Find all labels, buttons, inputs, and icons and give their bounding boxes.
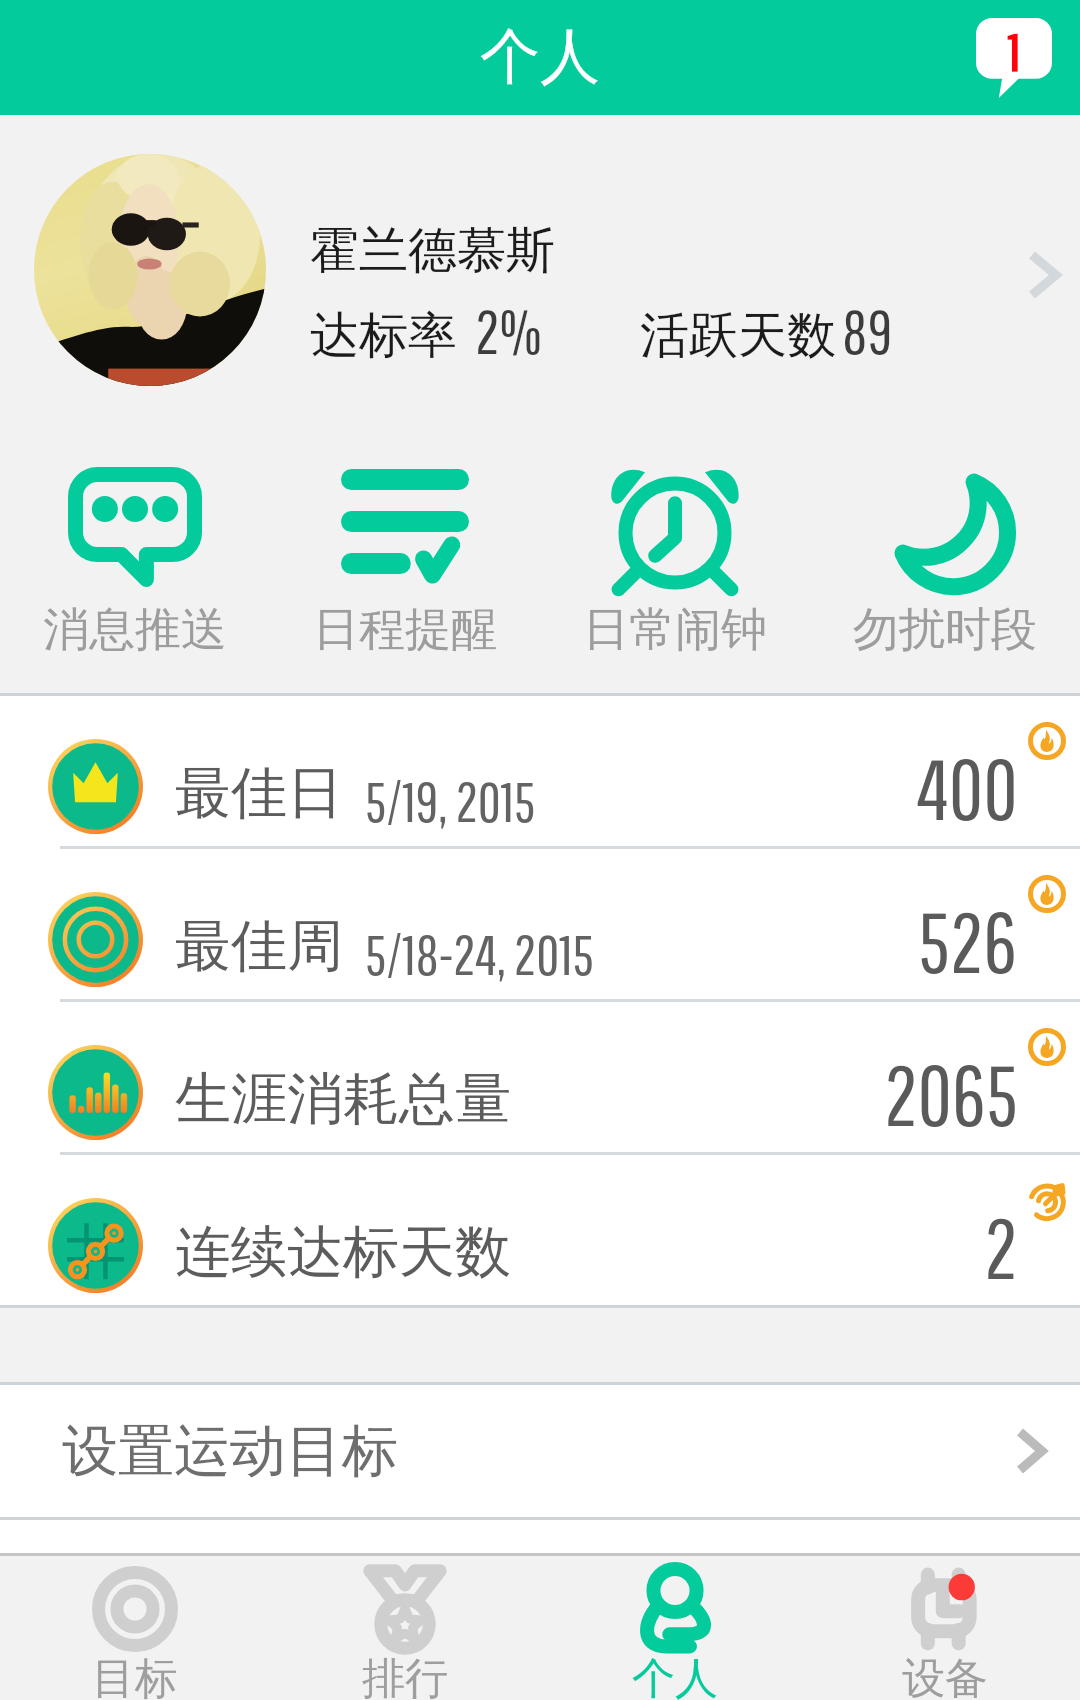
button[interactable]: Messages [964, 0, 1064, 115]
button[interactable]: 日常闹钟 [540, 435, 810, 690]
staticText: 个人 [632, 1652, 718, 1700]
staticText: 日常闹钟 [583, 601, 767, 659]
staticText: 2 [984, 1199, 1018, 1296]
button[interactable]: 霍兰德慕斯 [0, 115, 1080, 435]
staticText: 生涯消耗总量 [175, 1064, 511, 1135]
staticText: 2065 [884, 1046, 1018, 1143]
staticText: 5/19, 2015 [365, 769, 536, 834]
staticText: 89 [842, 296, 893, 366]
staticText: 5/18-24, 2015 [365, 922, 594, 987]
button[interactable]: 设置运动目标 [0, 1385, 1080, 1517]
staticText: 设置运动目标 [62, 1416, 398, 1487]
staticText: 连续达标天数 [175, 1217, 511, 1288]
staticText: 设备 [902, 1652, 988, 1700]
button[interactable]: 消息推送 [0, 435, 270, 690]
button[interactable]: 目标 [0, 1556, 270, 1700]
staticText: 2% [475, 296, 542, 366]
button[interactable]: 日程提醒 [270, 435, 540, 690]
button[interactable]: 设备 [810, 1556, 1080, 1700]
staticText: 最佳日 [175, 758, 343, 829]
staticText: 活跃天数 [640, 305, 836, 367]
button[interactable]: 个人 [540, 1556, 810, 1700]
staticText: 个人 [480, 19, 600, 95]
button[interactable]: 最佳周 [0, 849, 1080, 999]
staticText: 400 [917, 740, 1018, 837]
staticText: 最佳周 [175, 911, 343, 982]
button[interactable]: 生涯消耗总量 [0, 1002, 1080, 1152]
staticText: 勿扰时段 [853, 601, 1037, 659]
staticText: 达标率 [310, 305, 457, 367]
staticText: 526 [918, 893, 1018, 990]
staticText: 目标 [92, 1652, 178, 1700]
staticText: 消息推送 [43, 601, 227, 659]
staticText: 日程提醒 [313, 601, 497, 659]
staticText: 霍兰德慕斯 [310, 220, 555, 282]
button[interactable]: 连续达标天数 [0, 1155, 1080, 1305]
button[interactable]: 勿扰时段 [810, 435, 1080, 690]
button[interactable]: 排行 [270, 1556, 540, 1700]
staticText: 排行 [362, 1652, 448, 1700]
button[interactable]: 最佳日 [0, 696, 1080, 846]
staticText: 1 [1008, 21, 1021, 81]
